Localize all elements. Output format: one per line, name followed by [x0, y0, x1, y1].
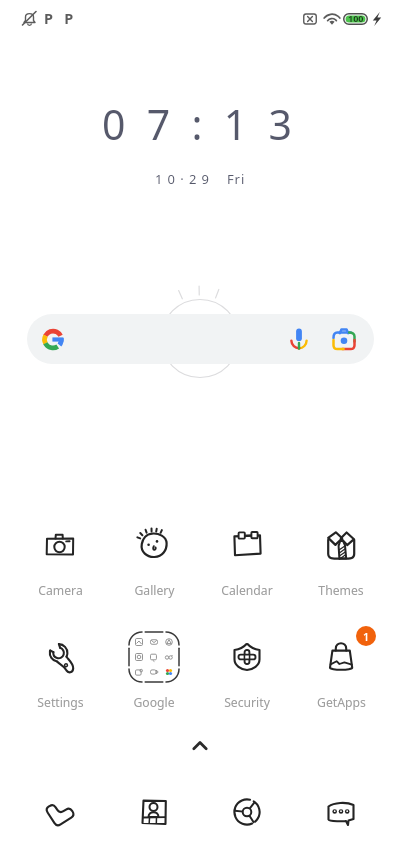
staticText: Gallery [134, 582, 175, 599]
staticText: GetApps [317, 694, 366, 711]
staticText: Settings [37, 694, 84, 711]
staticText: 1 0 · 2 9 Fri [155, 170, 246, 188]
staticText: 100 [348, 12, 364, 24]
staticText: Camera [38, 582, 83, 599]
staticText: Google [133, 694, 175, 711]
staticText: Themes [318, 582, 364, 599]
button[interactable]: Contacts [124, 782, 184, 842]
button[interactable]: Open app drawer [180, 730, 220, 762]
button[interactable]: Google [108, 633, 200, 723]
button[interactable]: Settings [14, 633, 106, 723]
staticText: Calendar [221, 582, 273, 599]
button[interactable]: Gallery [108, 521, 200, 611]
button[interactable]: Voice search [279, 314, 319, 364]
staticText: P P [44, 8, 74, 28]
button[interactable]: Google Lens [324, 314, 364, 364]
button[interactable]: Browser [217, 782, 277, 842]
button[interactable]: Google search [27, 314, 374, 364]
button[interactable]: 1 [295, 633, 387, 723]
button[interactable]: Security [201, 633, 293, 723]
button[interactable]: Themes [295, 521, 387, 611]
staticText: 0 7 : 1 3 [102, 96, 298, 152]
staticText: 1 [363, 629, 370, 644]
button[interactable]: Camera [14, 521, 106, 611]
button[interactable]: Calendar [201, 521, 293, 611]
button[interactable]: Phone [30, 782, 90, 842]
staticText: Security [224, 694, 270, 711]
button[interactable]: Messages [311, 782, 371, 842]
